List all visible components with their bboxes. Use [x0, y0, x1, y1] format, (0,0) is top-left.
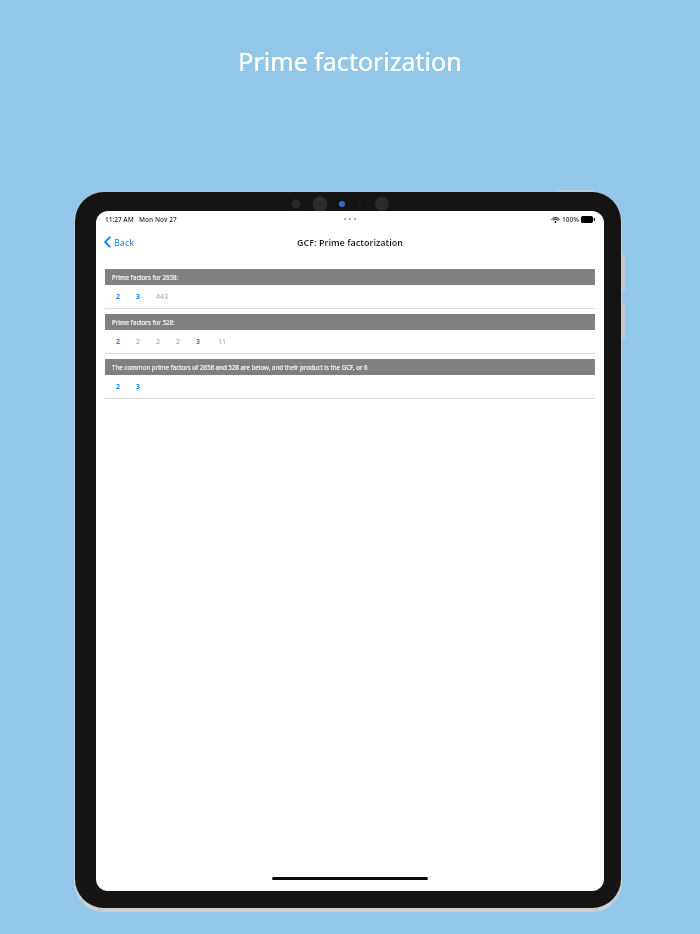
staticText: 3: [136, 292, 141, 302]
staticText: Prime factors for 2658:: [112, 273, 179, 281]
staticText: 100%: [562, 215, 579, 224]
staticText: 2: [116, 382, 121, 392]
button[interactable]: Prime factors for 2658:: [96, 269, 604, 314]
button[interactable]: The common prime factors of 2658 and 528…: [96, 359, 604, 404]
staticText: 2: [176, 337, 181, 347]
staticText: 2: [156, 337, 161, 347]
staticText: 3: [196, 337, 201, 347]
staticText: 3: [136, 382, 141, 392]
staticText: GCF: Prime factorization: [297, 236, 404, 248]
staticText: Prime factorization: [238, 44, 462, 78]
staticText: 11: [218, 337, 227, 347]
staticText: 2: [136, 337, 141, 347]
staticText: 11:27 AM: [105, 215, 134, 224]
staticText: Prime factors for 528:: [112, 318, 175, 326]
staticText: Mon Nov 27: [139, 215, 177, 224]
staticText: 2: [116, 292, 121, 302]
staticText: Back: [114, 236, 135, 248]
button[interactable]: Back: [102, 233, 137, 251]
staticText: 443: [156, 292, 169, 302]
button[interactable]: Prime factors for 528:: [96, 314, 604, 359]
staticText: The common prime factors of 2658 and 528…: [112, 363, 368, 371]
staticText: 2: [116, 337, 121, 347]
